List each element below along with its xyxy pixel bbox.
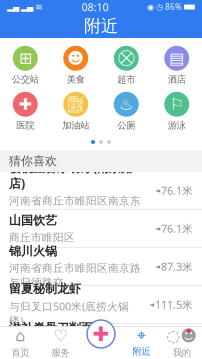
button[interactable]: 留夏秘制龙虾 bbox=[0, 286, 202, 324]
staticText: ◄ bbox=[155, 263, 160, 270]
staticText: ▂▄ bbox=[7, 2, 19, 12]
button[interactable]: ⊞ bbox=[0, 45, 50, 86]
staticText: ◄ bbox=[149, 301, 154, 308]
staticText: 首页 bbox=[11, 347, 29, 358]
staticText: ⛽︎ bbox=[66, 95, 86, 113]
staticText: ▤ bbox=[169, 49, 184, 67]
staticText: 山国饮艺 bbox=[9, 213, 57, 228]
button[interactable]: ︎☻ bbox=[162, 326, 202, 359]
staticText: 86% bbox=[165, 2, 182, 12]
staticText: 超市 bbox=[117, 74, 135, 85]
staticText: 公厕 bbox=[117, 120, 135, 131]
button[interactable]: 樱桃里音乐餐厅(南京路店) bbox=[0, 172, 202, 210]
staticText: 加油站 bbox=[62, 120, 89, 131]
button[interactable]: ⌖ bbox=[121, 326, 162, 359]
staticText: 医院 bbox=[16, 120, 34, 131]
button[interactable]: ♨ bbox=[101, 91, 151, 132]
staticText: ⌖ bbox=[137, 328, 146, 344]
staticText: 与归叉口500米(底捞火锅楼) bbox=[9, 299, 129, 327]
staticText: ▂▄ bbox=[21, 2, 33, 12]
staticText: ♨ bbox=[119, 95, 133, 113]
button[interactable]: 滋补脊骨刀削面馆 bbox=[0, 324, 202, 359]
staticText: 附近 bbox=[132, 346, 150, 357]
staticText: 我的 bbox=[173, 347, 191, 358]
button[interactable]: 发布 bbox=[81, 318, 121, 358]
staticText: 111.5米 bbox=[155, 297, 193, 312]
button[interactable]: 山国饮艺 bbox=[0, 210, 202, 248]
staticText: ≋ bbox=[35, 2, 43, 12]
staticText: 滋补脊骨刀削面馆 bbox=[9, 320, 105, 335]
button[interactable]: ☻ bbox=[50, 45, 101, 86]
staticText: 猜你喜欢 bbox=[9, 154, 57, 168]
staticText: 公交站 bbox=[12, 74, 39, 85]
staticText: 157.2米 bbox=[155, 335, 193, 350]
staticText: 87.3米 bbox=[161, 259, 193, 274]
staticText: ✚ bbox=[19, 95, 32, 113]
button[interactable]: ⌂ bbox=[0, 326, 40, 359]
staticText: ◉ bbox=[147, 2, 154, 12]
staticText: 08:10 bbox=[81, 0, 108, 14]
staticText: ◄ bbox=[155, 187, 160, 194]
staticText: ⌂ bbox=[15, 327, 25, 345]
staticText: 76.1米 bbox=[161, 183, 193, 198]
staticText: 留夏秘制龙虾 bbox=[9, 281, 81, 296]
staticText: ✚ bbox=[92, 323, 109, 345]
button[interactable]: 锦川火锅 bbox=[0, 248, 202, 286]
staticText: ⚐ bbox=[170, 95, 184, 113]
staticText: 河南省商丘市睢阳区南京东路133 bbox=[9, 194, 141, 222]
staticText: ⛒ bbox=[118, 50, 134, 66]
staticText: 河南省商丘市睢阳区南京路 bbox=[9, 338, 130, 359]
staticText: 服务 bbox=[52, 347, 70, 358]
button[interactable]: ⛽︎ bbox=[50, 91, 101, 132]
staticText: 商丘市睢阳区 bbox=[9, 231, 75, 244]
staticText: ☻ bbox=[67, 49, 84, 67]
staticText: 附近 bbox=[84, 15, 118, 37]
staticText: 樱桃里音乐餐厅(南京路店) bbox=[9, 159, 133, 191]
button[interactable]: ♡ bbox=[40, 326, 81, 359]
staticText: 锦川火锅 bbox=[9, 244, 57, 259]
staticText: ︎☻ bbox=[166, 327, 197, 345]
staticText: ⊞ bbox=[19, 49, 32, 67]
staticText: ♡ bbox=[54, 327, 68, 345]
staticText: 美食 bbox=[67, 74, 85, 85]
button[interactable]: ✚ bbox=[0, 91, 50, 132]
button[interactable]: ⚐ bbox=[151, 91, 202, 132]
staticText: 游泳 bbox=[168, 120, 186, 131]
button[interactable]: ▤ bbox=[151, 45, 202, 86]
staticText: 酒店 bbox=[168, 74, 186, 85]
staticText: ◄ bbox=[155, 225, 160, 232]
staticText: 76.1米 bbox=[161, 221, 193, 236]
staticText: ◷ bbox=[156, 2, 163, 12]
staticText: 河南省商丘市睢阳区南京路与归德路交… bbox=[9, 262, 141, 289]
button[interactable]: ⛒ bbox=[101, 45, 151, 86]
